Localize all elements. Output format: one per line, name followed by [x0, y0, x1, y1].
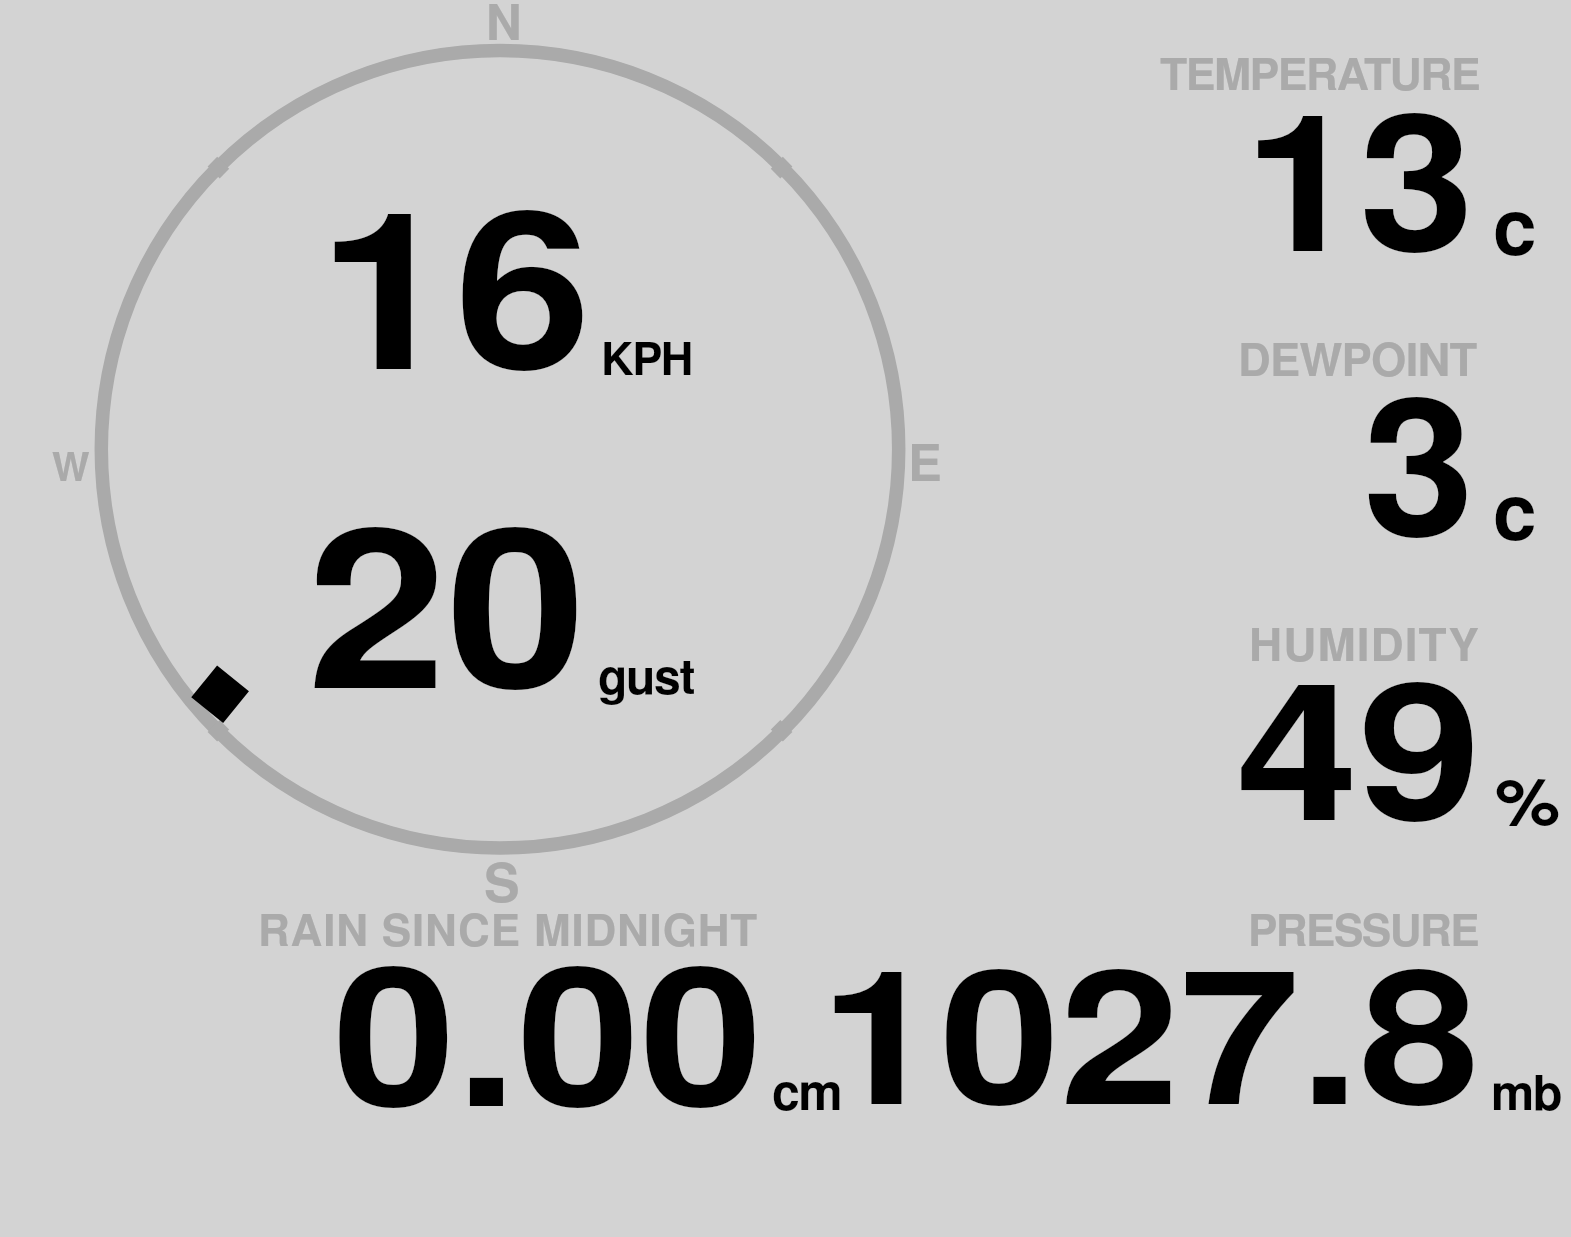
button[interactable]: Wind direction dial, 16 KPH gusting 20 — [90, 40, 910, 860]
staticText: 13 — [1244, 37, 1474, 310]
staticText: S — [484, 842, 520, 918]
staticText: HUMIDITY — [1249, 609, 1481, 675]
staticText: W — [52, 436, 90, 493]
staticText: mb — [1491, 1055, 1561, 1125]
staticText: 3 — [1363, 320, 1475, 595]
staticText: E — [908, 424, 942, 497]
staticText: RAIN SINCE MIDNIGHT — [258, 896, 759, 959]
staticText: DEWPOINT — [1238, 325, 1477, 390]
staticText: 0.00 — [333, 889, 763, 1166]
staticText: % — [1495, 753, 1561, 845]
staticText: N — [486, 0, 522, 56]
staticText: KPH — [601, 324, 692, 389]
staticText: 16 — [318, 123, 592, 437]
button[interactable]: Pressure 1027.8 millibars — [880, 880, 1571, 1130]
button[interactable]: Humidity 49 percent — [1000, 588, 1571, 864]
staticText: c — [1493, 167, 1537, 280]
staticText: 20 — [307, 439, 587, 757]
staticText: PRESSURE — [1248, 896, 1479, 959]
staticText: cm — [772, 1054, 842, 1126]
staticText: gust — [598, 640, 695, 709]
staticText: 49 — [1236, 606, 1481, 879]
staticText: TEMPERATURE — [1160, 40, 1480, 104]
staticText: c — [1493, 452, 1537, 565]
button[interactable]: Rain since midnight 0.00 cm — [230, 880, 870, 1130]
button[interactable]: Dewpoint 3 degrees C — [1000, 304, 1571, 580]
staticText: 1027.8 — [820, 894, 1479, 1161]
button[interactable]: Temperature 13 degrees C — [1000, 20, 1571, 296]
